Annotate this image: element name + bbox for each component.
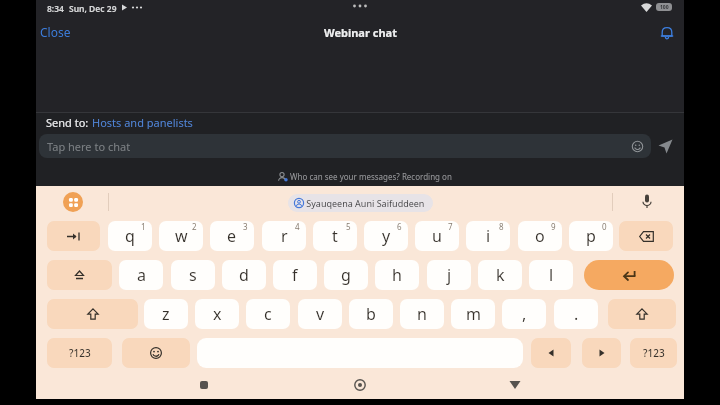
staticText: h: [392, 264, 402, 286]
staticText: 8: [499, 221, 504, 232]
staticText: d: [239, 264, 249, 286]
staticText: ?123: [69, 346, 91, 360]
staticText: f: [292, 264, 298, 286]
staticText: Send to:: [46, 115, 92, 129]
button[interactable]: [584, 260, 674, 290]
button[interactable]: .: [554, 299, 598, 329]
button[interactable]: o: [518, 221, 562, 251]
staticText: 2: [192, 221, 197, 232]
button[interactable]: [582, 338, 621, 368]
button[interactable]: k: [478, 260, 522, 290]
staticText: 1: [141, 221, 146, 232]
button[interactable]: [47, 260, 112, 290]
button[interactable]: [656, 23, 677, 43]
staticText: ?123: [643, 346, 665, 360]
button[interactable]: t: [313, 221, 357, 251]
staticText: Syauqeena Auni Saifuddeen: [304, 197, 425, 209]
staticText: t: [332, 225, 338, 247]
button[interactable]: [47, 299, 138, 329]
button[interactable]: c: [246, 299, 290, 329]
staticText: 0: [602, 221, 607, 232]
button[interactable]: z: [144, 299, 188, 329]
staticText: e: [227, 225, 237, 247]
button[interactable]: Syauqeena Auni Saifuddeen: [288, 194, 433, 212]
button[interactable]: q: [108, 221, 152, 251]
staticText: b: [366, 303, 376, 325]
staticText: u: [432, 225, 442, 247]
button[interactable]: e: [210, 221, 254, 251]
button[interactable]: l: [529, 260, 573, 290]
staticText: r: [281, 225, 288, 247]
button[interactable]: b: [349, 299, 393, 329]
staticText: s: [189, 264, 197, 286]
staticText: l: [549, 264, 554, 286]
staticText: j: [447, 264, 452, 286]
staticText: .: [574, 303, 579, 325]
button[interactable]: Close: [36, 22, 96, 42]
staticText: 5: [346, 221, 351, 232]
staticText: Who can see your messages? Recording on: [288, 171, 452, 182]
staticText: Sun, Dec 29: [69, 3, 117, 15]
staticText: Tap here to chat: [47, 139, 131, 154]
button[interactable]: g: [324, 260, 368, 290]
staticText: p: [586, 225, 596, 247]
button[interactable]: [608, 299, 676, 329]
button[interactable]: [354, 379, 366, 391]
staticText: q: [125, 225, 135, 247]
button[interactable]: Hosts and panelists: [92, 115, 193, 129]
button[interactable]: ?123: [630, 338, 677, 368]
staticText: g: [341, 264, 351, 286]
staticText: w: [175, 225, 188, 247]
staticText: a: [137, 264, 146, 286]
staticText: Close: [40, 24, 71, 40]
staticText: 6: [397, 221, 402, 232]
staticText: y: [382, 225, 391, 247]
button[interactable]: i: [466, 221, 510, 251]
button[interactable]: r: [262, 221, 306, 251]
staticText: x: [213, 303, 222, 325]
button[interactable]: [531, 338, 571, 368]
staticText: n: [417, 303, 427, 325]
staticText: ,: [522, 303, 527, 325]
button[interactable]: p: [569, 221, 613, 251]
staticText: k: [496, 264, 505, 286]
button[interactable]: u: [415, 221, 459, 251]
button[interactable]: j: [427, 260, 471, 290]
staticText: z: [162, 303, 170, 325]
button[interactable]: w: [159, 221, 203, 251]
button[interactable]: [199, 380, 209, 390]
button[interactable]: m: [451, 299, 495, 329]
button[interactable]: [47, 221, 100, 251]
button[interactable]: a: [119, 260, 163, 290]
staticText: 7: [448, 221, 453, 232]
staticText: m: [466, 303, 481, 325]
staticText: 8:34: [47, 3, 64, 15]
button[interactable]: [619, 221, 673, 251]
button[interactable]: y: [364, 221, 408, 251]
button[interactable]: s: [171, 260, 215, 290]
button[interactable]: [509, 380, 521, 390]
staticText: 3: [243, 221, 248, 232]
button[interactable]: x: [195, 299, 239, 329]
staticText: 4: [295, 221, 300, 232]
staticText: v: [316, 303, 325, 325]
staticText: i: [486, 225, 491, 247]
button[interactable]: [63, 192, 83, 212]
button[interactable]: f: [273, 260, 317, 290]
button[interactable]: n: [400, 299, 444, 329]
staticText: Webinar chat: [324, 25, 397, 40]
button[interactable]: [641, 194, 653, 210]
button[interactable]: ,: [502, 299, 546, 329]
staticText: 100: [660, 4, 669, 11]
staticText: o: [535, 225, 545, 247]
staticText: 9: [551, 221, 556, 232]
button[interactable]: ?123: [47, 338, 112, 368]
button[interactable]: [658, 139, 673, 154]
button[interactable]: d: [222, 260, 266, 290]
button[interactable]: [122, 338, 190, 368]
button[interactable]: Tap here to chat: [39, 134, 651, 158]
button[interactable]: v: [298, 299, 342, 329]
staticText: c: [264, 303, 272, 325]
button[interactable]: h: [375, 260, 419, 290]
